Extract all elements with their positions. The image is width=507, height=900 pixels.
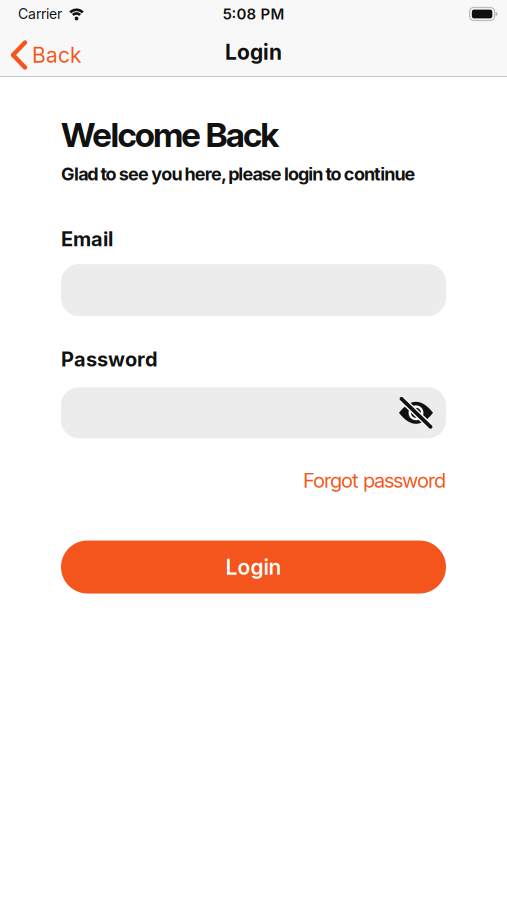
staticText: Glad to see you here, please login to co… [61, 163, 415, 185]
staticText: Back [32, 42, 81, 68]
staticText: Carrier [18, 5, 62, 22]
button[interactable]: Back [0, 36, 81, 68]
button[interactable]: Login [61, 540, 446, 593]
button[interactable]: Forgot password [303, 468, 446, 492]
button[interactable]: Show password [398, 399, 434, 427]
staticText: Forgot password [303, 468, 446, 492]
staticText: 5:08 PM [222, 5, 284, 23]
staticText: Login [225, 554, 281, 580]
staticText: Welcome Back [61, 114, 279, 155]
staticText: Password [61, 347, 158, 371]
staticText: Email [61, 227, 113, 251]
staticText: Login [225, 39, 282, 65]
